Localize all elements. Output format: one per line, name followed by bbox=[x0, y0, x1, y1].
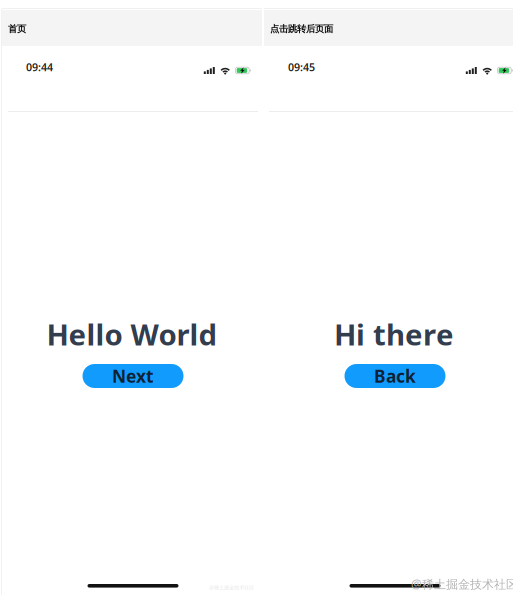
button[interactable]: Back bbox=[344, 364, 445, 388]
staticText: 点击跳转后页面 bbox=[270, 23, 333, 35]
staticText: Hi there bbox=[334, 314, 454, 353]
staticText: 09:44 bbox=[26, 60, 53, 74]
staticText: @稀土掘金技术社区 bbox=[209, 584, 254, 591]
staticText: @稀土掘金技术社区 bbox=[411, 576, 513, 592]
staticText: Back bbox=[374, 364, 416, 387]
staticText: 09:45 bbox=[288, 60, 315, 74]
staticText: Next bbox=[112, 364, 154, 387]
staticText: 首页 bbox=[8, 23, 26, 35]
button[interactable]: 点击跳转后页面 bbox=[264, 10, 513, 46]
button[interactable]: Next bbox=[82, 364, 183, 388]
staticText: Hello World bbox=[46, 314, 217, 353]
button[interactable]: 首页 bbox=[2, 10, 262, 46]
